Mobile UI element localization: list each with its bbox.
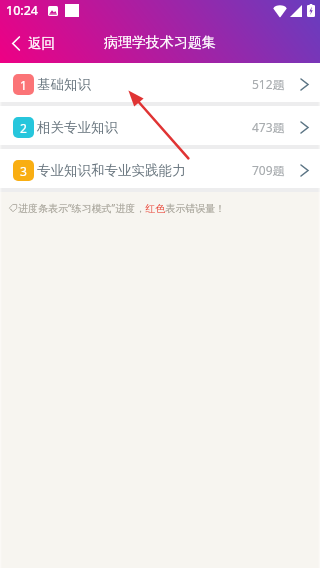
staticText: 512题 [252,76,285,92]
staticText: 进度条表示“练习模式”进度，红色表示错误量！ [18,201,226,215]
staticText: 709题 [252,162,285,178]
staticText: 10:24 [6,2,39,19]
staticText: 返回 [28,35,55,52]
staticText: 3 [20,163,27,179]
staticText: 基础知识 [37,76,91,93]
staticText: 病理学技术习题集 [104,34,216,52]
staticText: 473题 [252,119,285,135]
button[interactable]: 返回 [0,23,69,63]
button[interactable]: 2 [0,106,320,145]
staticText: 专业知识和专业实践能力 [37,162,186,179]
button[interactable]: 3 [0,149,320,188]
staticText: 相关专业知识 [37,119,118,136]
staticText: 1 [20,77,27,93]
staticText: 2 [20,120,27,136]
button[interactable]: 1 [0,63,320,102]
